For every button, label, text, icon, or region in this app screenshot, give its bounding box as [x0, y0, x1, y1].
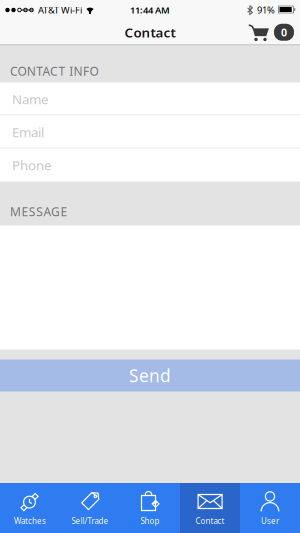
button[interactable]: Watches [0, 483, 60, 533]
staticText: 11:44 AM [130, 4, 170, 16]
button[interactable]: User [240, 483, 300, 533]
staticText: MESSAGE [10, 204, 67, 219]
button[interactable]: Sell/Trade [60, 483, 120, 533]
button[interactable]: Contact [180, 483, 240, 533]
staticText: Phone [12, 156, 52, 174]
button[interactable]: Send [0, 359, 300, 391]
button[interactable]: Email [0, 115, 300, 148]
staticText: Send [129, 364, 171, 387]
button[interactable]: Phone [0, 148, 300, 181]
staticText: 91% [257, 4, 275, 16]
button[interactable]: Cart [248, 23, 294, 42]
staticText: 0 [281, 25, 287, 39]
button[interactable]: Shop [120, 483, 180, 533]
staticText: Contact [195, 516, 224, 526]
staticText: Contact [124, 23, 175, 41]
staticText: Sell/Trade [71, 516, 108, 526]
staticText: Name [12, 90, 49, 108]
staticText: AT&T Wi-Fi [38, 4, 82, 16]
staticText: CONTACT INFO [10, 63, 98, 79]
staticText: Watches [14, 516, 46, 526]
staticText: Shop [140, 516, 159, 526]
staticText: Email [12, 123, 44, 141]
staticText: User [261, 516, 279, 526]
button[interactable]: Name [0, 82, 300, 115]
